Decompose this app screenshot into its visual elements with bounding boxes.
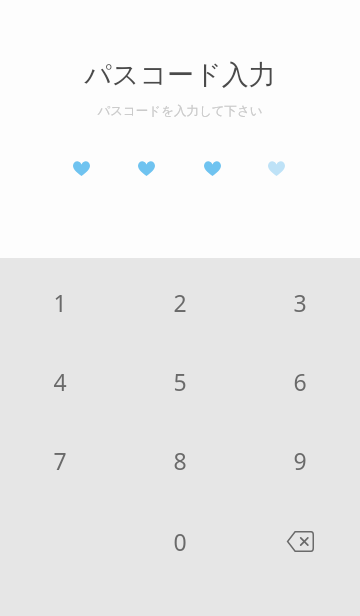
button[interactable]: 6 — [240, 342, 360, 421]
button[interactable]: 4 — [0, 342, 120, 421]
staticText: 8 — [173, 445, 187, 476]
staticText: パスコード入力 — [84, 58, 276, 92]
button[interactable]: 5 — [120, 342, 240, 421]
staticText: 3 — [293, 287, 307, 318]
button[interactable]: 8 — [120, 421, 240, 500]
staticText: 7 — [53, 445, 67, 476]
button[interactable]: 2 — [120, 263, 240, 342]
staticText: パスコードを入力して下さい — [97, 103, 263, 119]
button[interactable]: 3 — [240, 263, 360, 342]
staticText: 9 — [293, 445, 307, 476]
staticText: 0 — [173, 526, 187, 557]
staticText: 4 — [53, 366, 67, 397]
staticText: 1 — [53, 287, 67, 318]
staticText: 2 — [173, 287, 187, 318]
button[interactable]: 9 — [240, 421, 360, 500]
button[interactable]: 1 — [0, 263, 120, 342]
button[interactable]: 7 — [0, 421, 120, 500]
staticText: 5 — [173, 366, 187, 397]
button[interactable]: Delete — [240, 500, 360, 582]
staticText: 6 — [293, 366, 307, 397]
button[interactable]: 0 — [120, 500, 240, 582]
